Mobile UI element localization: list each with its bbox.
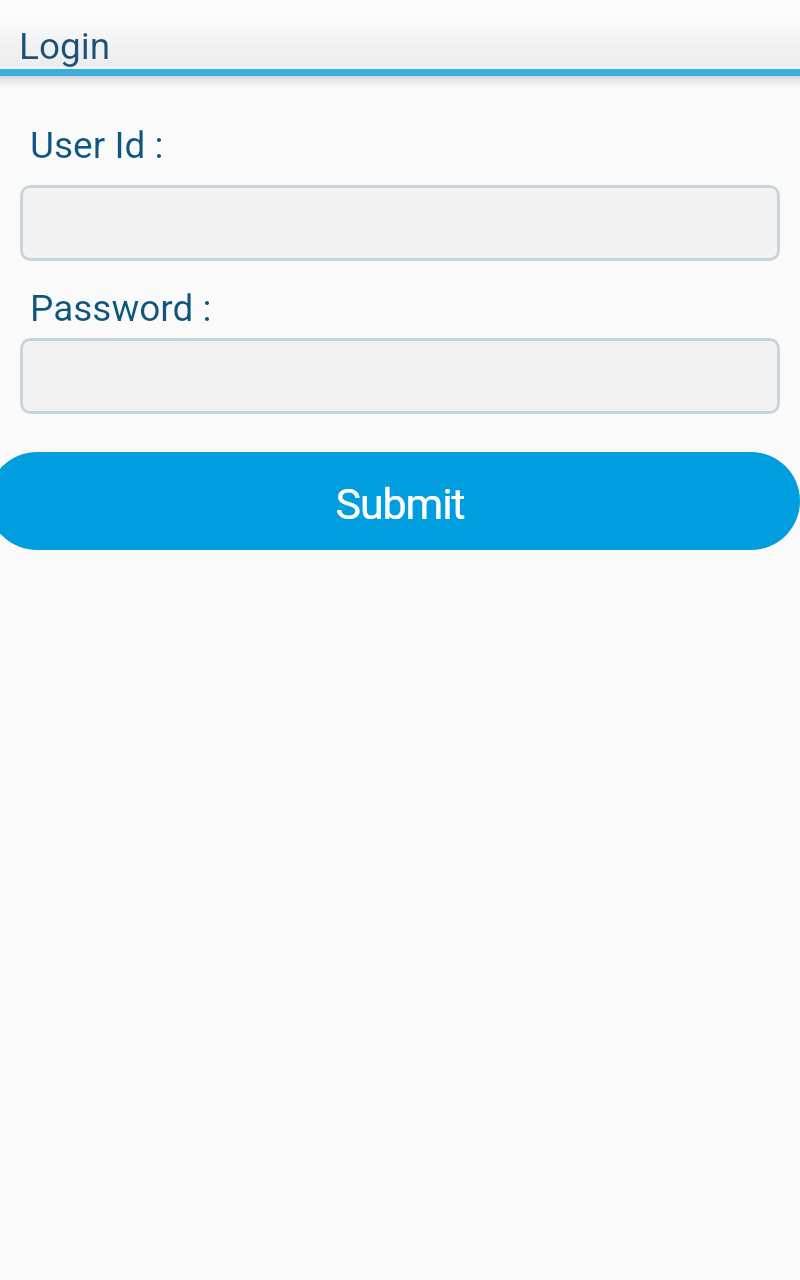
button[interactable]: User Id input field	[20, 185, 780, 261]
staticText: Submit	[335, 479, 465, 529]
staticText: User Id :	[30, 124, 164, 167]
staticText: Password :	[30, 287, 212, 330]
button[interactable]: Password input field	[20, 338, 780, 414]
button[interactable]: Submit	[0, 452, 800, 550]
staticText: Login	[19, 25, 111, 68]
